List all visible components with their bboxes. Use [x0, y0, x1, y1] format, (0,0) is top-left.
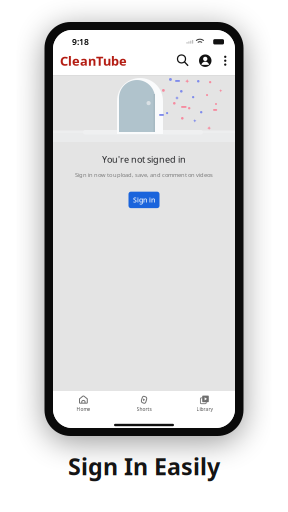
staticText: Shorts [136, 406, 151, 412]
staticText: CleanTube [60, 52, 127, 69]
staticText: Home [76, 406, 90, 412]
button[interactable]: Your account [194, 54, 216, 67]
staticText: Sign In Easily [68, 450, 220, 482]
button[interactable]: Search [172, 55, 194, 66]
button[interactable]: Sign in [128, 192, 159, 208]
staticText: Sign in now to upload, save, and comment… [75, 171, 213, 179]
button[interactable]: Shorts [114, 392, 174, 416]
staticText: 9:18 [72, 36, 89, 48]
button[interactable]: CleanTube [60, 52, 127, 69]
button[interactable]: Home [53, 392, 114, 416]
button[interactable]: Library [174, 392, 235, 416]
staticText: Library [197, 406, 213, 412]
staticText: You're not signed in [102, 153, 186, 165]
button[interactable]: More options [216, 55, 230, 66]
staticText: Sign in [133, 195, 155, 205]
